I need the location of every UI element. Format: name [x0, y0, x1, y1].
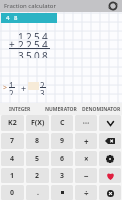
- button[interactable]: 8: [26, 133, 49, 149]
- button[interactable]: Backspace: [99, 133, 121, 149]
- button[interactable]: 9: [51, 133, 73, 149]
- button[interactable]: INTEGER: [0, 103, 40, 115]
- staticText: 5: [35, 154, 40, 164]
- button[interactable]: C: [51, 115, 73, 131]
- button[interactable]: More options: [75, 115, 97, 131]
- staticText: INTEGER: [9, 106, 31, 113]
- button[interactable]: Favorite: [99, 168, 121, 183]
- button[interactable]: Clear: [99, 185, 121, 200]
- staticText: 5: [34, 30, 40, 39]
- staticText: 2: [26, 38, 32, 47]
- staticText: 2: [26, 30, 32, 39]
- staticText: +: [21, 82, 27, 94]
- staticText: 0: [34, 49, 40, 58]
- staticText: 1: [18, 30, 24, 39]
- other: Settings: [104, 153, 116, 165]
- button[interactable]: 0: [1, 185, 24, 200]
- staticText: 9: [60, 136, 65, 146]
- staticText: >: [3, 83, 8, 93]
- staticText: 3: [18, 49, 24, 58]
- staticText: 4: [10, 154, 15, 164]
- button[interactable]: Expand: [99, 115, 121, 131]
- button[interactable]: NUMERATOR: [40, 103, 81, 115]
- other: Backspace: [104, 135, 116, 147]
- staticText: 4: [6, 14, 10, 22]
- staticText: 6: [60, 154, 65, 164]
- staticText: 5: [34, 38, 40, 47]
- button[interactable]: DENOMINATOR: [81, 103, 122, 115]
- staticText: −: [84, 170, 89, 181]
- staticText: 2: [35, 171, 40, 181]
- staticText: +: [9, 37, 15, 51]
- staticText: 0: [10, 188, 15, 198]
- staticText: NUMERATOR: [45, 106, 77, 113]
- button[interactable]: .: [26, 185, 49, 200]
- staticText: .: [37, 188, 39, 198]
- staticText: ÷: [84, 187, 89, 198]
- staticText: 2: [40, 80, 45, 87]
- button[interactable]: 2: [26, 168, 49, 183]
- staticText: F(X): [31, 118, 45, 128]
- staticText: 2: [18, 38, 24, 47]
- button[interactable]: 3: [51, 168, 73, 183]
- staticText: 4: [42, 38, 48, 47]
- button[interactable]: F(X): [26, 115, 49, 131]
- staticText: 1: [10, 171, 15, 181]
- button[interactable]: 1: [1, 168, 24, 183]
- button[interactable]: Refresh: [108, 1, 118, 11]
- staticText: 5: [26, 49, 32, 58]
- button[interactable]: 7: [1, 133, 24, 149]
- other: Expand: [104, 117, 116, 129]
- staticText: K2: [8, 118, 17, 128]
- other: Favorite: [104, 170, 116, 182]
- button[interactable]: −: [75, 168, 97, 183]
- staticText: +: [84, 136, 89, 147]
- button[interactable]: 5: [26, 151, 49, 166]
- staticText: 8: [42, 49, 48, 58]
- other: More options: [80, 117, 92, 129]
- staticText: 1: [9, 80, 14, 87]
- staticText: 8: [35, 136, 40, 146]
- staticText: ×: [84, 153, 89, 164]
- button[interactable]: +: [75, 133, 97, 149]
- button[interactable]: [51, 185, 73, 200]
- staticText: Fraction calculator: [4, 2, 56, 10]
- button[interactable]: 6: [51, 151, 73, 166]
- other: Clear: [104, 187, 116, 199]
- staticText: 2: [9, 88, 14, 95]
- staticText: C: [60, 118, 65, 128]
- button[interactable]: ÷: [75, 185, 97, 200]
- staticText: 3: [40, 88, 45, 95]
- staticText: 4: [42, 30, 48, 39]
- staticText: 7: [10, 136, 15, 146]
- button[interactable]: ×: [75, 151, 97, 166]
- staticText: 8: [14, 14, 18, 22]
- button[interactable]: K2: [1, 115, 24, 131]
- button[interactable]: Settings: [99, 151, 121, 166]
- staticText: 3: [60, 171, 65, 181]
- staticText: DENOMINATOR: [82, 106, 121, 113]
- button[interactable]: 4: [1, 151, 24, 166]
